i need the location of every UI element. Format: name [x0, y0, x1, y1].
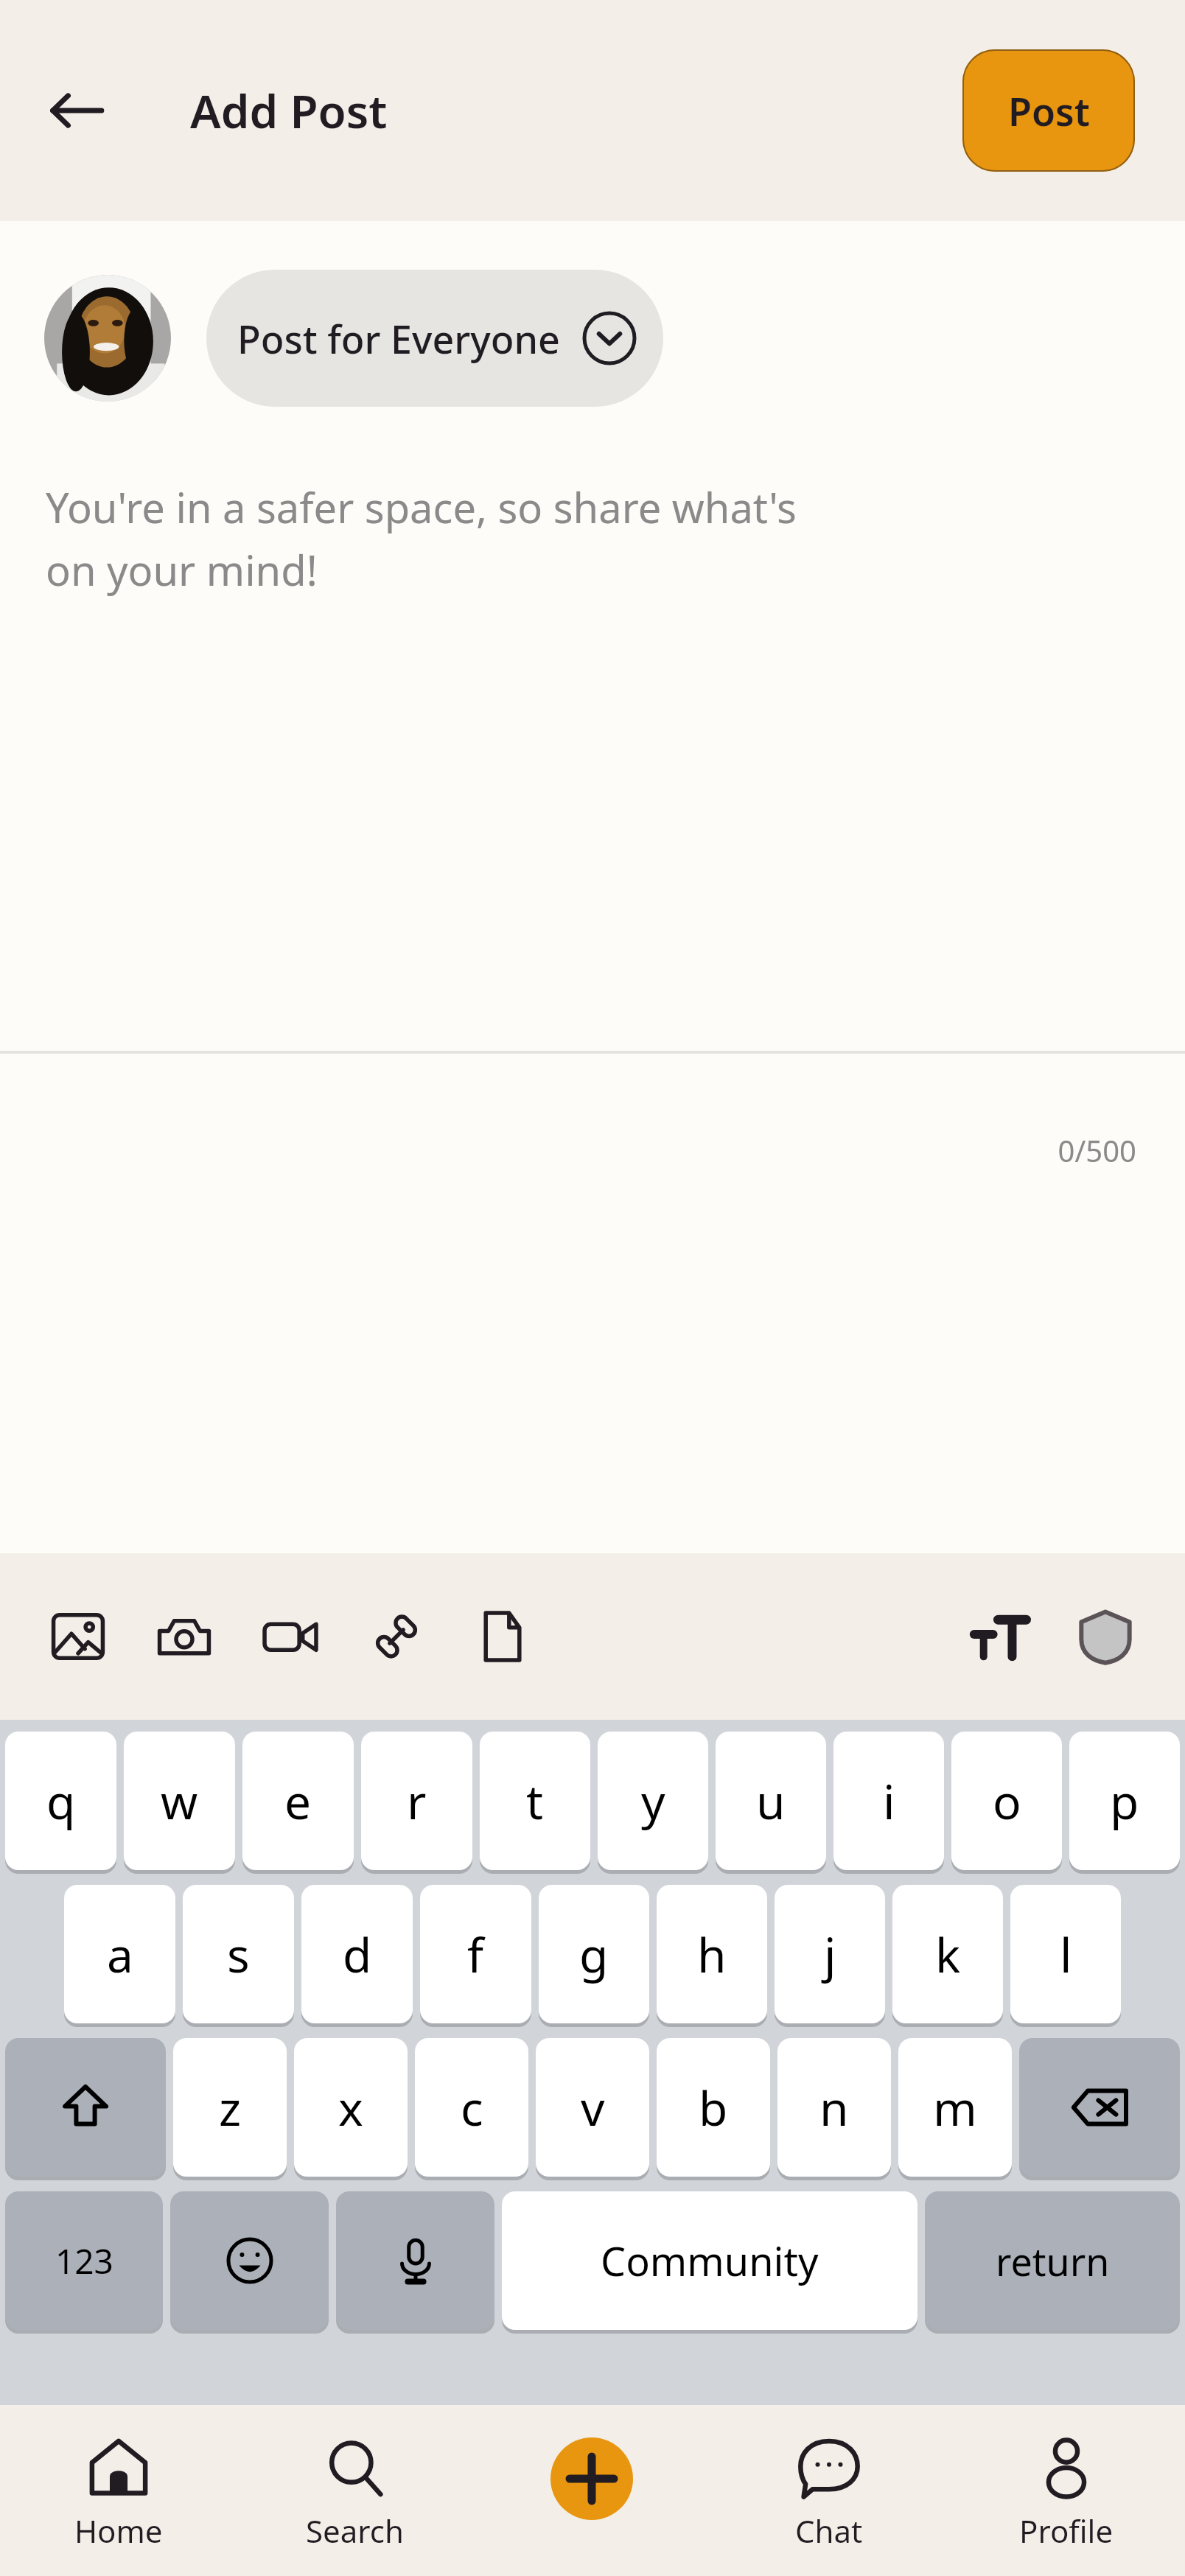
staticText: n — [819, 2076, 849, 2140]
staticText: Search — [306, 2510, 404, 2552]
button[interactable]: l — [1010, 1885, 1121, 2023]
staticText: j — [824, 1922, 836, 1987]
button[interactable]: Chat — [710, 2405, 948, 2576]
staticText: y — [641, 1769, 665, 1833]
button[interactable]: p — [1069, 1732, 1180, 1870]
staticText: 0/500 — [0, 1130, 1136, 1170]
staticText: 123 — [55, 2238, 113, 2284]
staticText: e — [284, 1769, 312, 1833]
staticText: r — [407, 1769, 427, 1833]
staticText: g — [579, 1922, 609, 1987]
button[interactable]: Search — [237, 2405, 473, 2576]
staticText: Post — [1008, 85, 1090, 137]
staticText: l — [1060, 1922, 1072, 1987]
staticText: o — [993, 1769, 1021, 1833]
button[interactable]: x — [294, 2038, 408, 2177]
button[interactable]: Attach file — [450, 1583, 556, 1690]
button[interactable]: c — [415, 2038, 528, 2177]
staticText: Add Post — [190, 80, 388, 141]
button[interactable]: Create post — [550, 2437, 633, 2520]
button[interactable]: n — [777, 2038, 891, 2177]
staticText: Chat — [795, 2510, 863, 2552]
button[interactable]: h — [657, 1885, 767, 2023]
button[interactable]: Add link — [343, 1583, 450, 1690]
button[interactable]: k — [892, 1885, 1003, 2023]
button[interactable]: Privacy — [1052, 1583, 1158, 1690]
staticText: You're in a safer space, so share what's… — [46, 479, 797, 598]
staticText: z — [219, 2076, 242, 2140]
button[interactable]: y — [598, 1732, 708, 1870]
button[interactable]: Text formatting — [946, 1583, 1052, 1690]
staticText: Community — [601, 2233, 819, 2288]
button[interactable]: Profile photo — [44, 275, 171, 402]
button[interactable]: Post — [962, 49, 1135, 172]
staticText: w — [161, 1769, 198, 1833]
staticText: p — [1110, 1769, 1139, 1833]
button[interactable]: Backspace — [1019, 2038, 1180, 2177]
button[interactable]: g — [539, 1885, 649, 2023]
button[interactable]: Emoji — [170, 2191, 329, 2330]
button[interactable]: return — [925, 2191, 1180, 2330]
button[interactable]: q — [5, 1732, 116, 1870]
staticText: Post for Everyone — [237, 312, 560, 365]
button[interactable]: Take photo — [131, 1583, 237, 1690]
button[interactable]: s — [183, 1885, 294, 2023]
button[interactable]: a — [64, 1885, 175, 2023]
button[interactable]: Shift — [5, 2038, 166, 2177]
button[interactable]: b — [657, 2038, 770, 2177]
staticText: a — [107, 1922, 133, 1987]
staticText: Home — [74, 2510, 163, 2552]
staticText: u — [756, 1769, 786, 1833]
staticText: x — [338, 2076, 363, 2140]
staticText: m — [933, 2076, 977, 2140]
button[interactable]: w — [124, 1732, 235, 1870]
staticText: k — [935, 1922, 961, 1987]
staticText: d — [343, 1922, 372, 1987]
staticText: i — [883, 1769, 895, 1833]
button[interactable]: Post for Everyone — [206, 270, 663, 407]
button[interactable]: Add image — [25, 1583, 131, 1690]
button[interactable]: m — [898, 2038, 1012, 2177]
staticText: q — [46, 1769, 76, 1833]
button[interactable]: f — [420, 1885, 531, 2023]
button[interactable]: u — [716, 1732, 826, 1870]
staticText: h — [697, 1922, 727, 1987]
button[interactable]: Profile — [948, 2405, 1185, 2576]
button[interactable]: i — [833, 1732, 944, 1870]
button[interactable]: 123 — [5, 2191, 163, 2330]
button[interactable]: Community — [502, 2191, 917, 2330]
button[interactable]: r — [361, 1732, 472, 1870]
staticText: c — [461, 2076, 483, 2140]
staticText: s — [227, 1922, 250, 1987]
button[interactable]: z — [173, 2038, 287, 2177]
button[interactable]: Voice input — [336, 2191, 494, 2330]
staticText: f — [467, 1922, 484, 1987]
button[interactable]: j — [775, 1885, 885, 2023]
button[interactable]: e — [242, 1732, 354, 1870]
staticText: return — [996, 2235, 1110, 2287]
staticText: t — [526, 1769, 544, 1833]
staticText: b — [699, 2076, 728, 2140]
button[interactable]: o — [951, 1732, 1062, 1870]
button[interactable]: d — [301, 1885, 413, 2023]
button[interactable]: v — [536, 2038, 649, 2177]
button[interactable]: t — [480, 1732, 590, 1870]
button[interactable]: Home — [0, 2405, 237, 2576]
button[interactable]: Back — [32, 66, 121, 155]
staticText: v — [581, 2076, 605, 2140]
staticText: Profile — [1019, 2510, 1114, 2552]
button[interactable]: Add video — [237, 1583, 343, 1690]
